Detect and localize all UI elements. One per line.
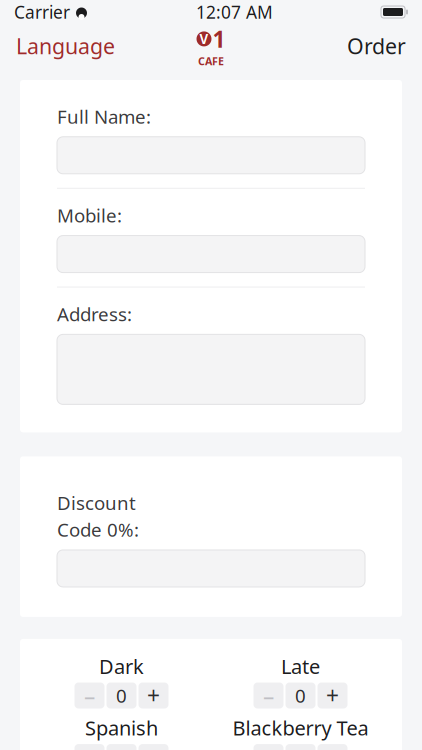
staticText: CAFE	[198, 54, 224, 68]
staticText: V	[199, 30, 208, 48]
staticText: –	[84, 680, 95, 711]
button[interactable]: Decrease Dark	[74, 682, 104, 708]
staticText: Late	[281, 653, 320, 680]
staticText: Dark	[99, 653, 144, 680]
button[interactable]: Increase Blackberry Tea	[317, 744, 347, 750]
staticText: Address:	[57, 302, 132, 326]
button[interactable]: Decrease Late	[253, 682, 283, 708]
staticText: Carrier	[14, 0, 70, 23]
button[interactable]: Increase Dark	[138, 682, 168, 708]
staticText: +	[326, 742, 339, 750]
staticText: Mobile:	[57, 203, 122, 228]
staticText: 0	[116, 683, 127, 708]
staticText: Language	[16, 32, 115, 60]
staticText: +	[326, 680, 339, 711]
staticText: –	[263, 680, 274, 711]
button[interactable]: Order	[331, 22, 422, 70]
staticText: 12:07 AM	[196, 0, 273, 23]
staticText: Discount	[57, 490, 136, 515]
button[interactable]: Decrease Spanish	[74, 744, 104, 750]
staticText: 0	[295, 683, 306, 708]
staticText: Blackberry Tea	[232, 714, 368, 741]
button[interactable]: Increase Late	[317, 682, 347, 708]
staticText: +	[147, 680, 160, 711]
staticText: Spanish	[85, 714, 158, 741]
staticText: Code 0%:	[57, 517, 139, 542]
button[interactable]: Increase Spanish	[138, 744, 168, 750]
staticText: –	[263, 742, 274, 750]
staticText: Full Name:	[57, 104, 151, 129]
staticText: –	[84, 742, 95, 750]
staticText: +	[147, 742, 160, 750]
staticText: Order	[347, 32, 406, 60]
button[interactable]: Decrease Blackberry Tea	[253, 744, 283, 750]
staticText: 1	[212, 24, 225, 54]
button[interactable]: Language	[0, 22, 131, 70]
